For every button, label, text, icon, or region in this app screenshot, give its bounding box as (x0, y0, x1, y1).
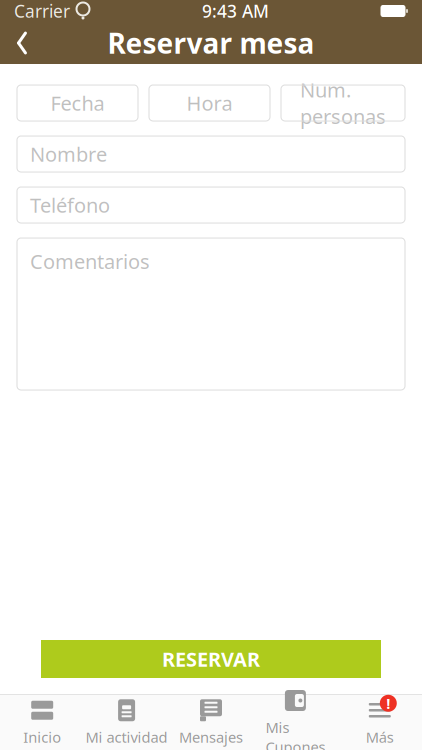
button[interactable]: Fecha (17, 85, 138, 121)
staticText: 9:43 AM (202, 0, 269, 22)
staticText: Hora (186, 90, 232, 116)
staticText: Mis Cupones (265, 717, 325, 750)
staticText: Más (366, 727, 394, 747)
staticText: Carrier (14, 0, 70, 22)
button[interactable]: Mi actividad (84, 695, 169, 750)
staticText: Teléfono (30, 192, 110, 218)
staticText: Reservar mesa (107, 24, 314, 62)
button[interactable]: Hora (149, 85, 270, 121)
button[interactable]: Back (0, 22, 44, 64)
staticText: Fecha (50, 90, 104, 116)
staticText: Num. personas (300, 76, 386, 129)
button[interactable]: Num. personas (281, 85, 405, 121)
button[interactable]: Teléfono (17, 187, 405, 223)
button[interactable]: Mis Cupones (253, 695, 338, 750)
staticText: Nombre (30, 141, 107, 167)
staticText: Mi actividad (86, 727, 168, 747)
button[interactable]: Nombre (17, 136, 405, 172)
staticText: Mensajes (179, 727, 243, 747)
button[interactable]: Comentarios (17, 238, 405, 390)
button[interactable]: Mensajes (169, 695, 253, 750)
button[interactable]: Inicio (0, 695, 84, 750)
staticText: RESERVAR (162, 646, 260, 672)
staticText: Comentarios (30, 248, 150, 275)
staticText: ! (386, 693, 390, 713)
button[interactable]: RESERVAR (41, 640, 381, 678)
button[interactable]: ! (338, 695, 422, 750)
staticText: Inicio (23, 727, 61, 747)
